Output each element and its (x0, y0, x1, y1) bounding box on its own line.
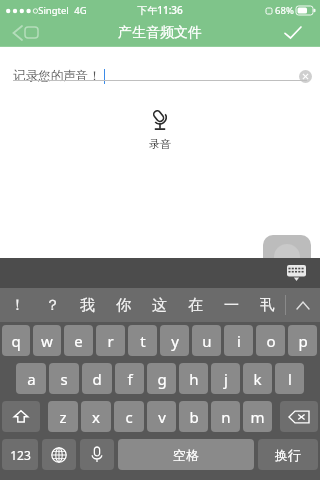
button[interactable]: w (33, 325, 61, 356)
button[interactable]: Clear text (299, 70, 312, 83)
staticText: n (221, 407, 231, 427)
button[interactable]: y (160, 325, 189, 356)
staticText: 丮 (260, 296, 275, 315)
button[interactable]: ？ (35, 288, 70, 322)
button[interactable]: i (224, 325, 253, 356)
button[interactable]: g (147, 363, 176, 394)
staticText: 记录您的声音！ (13, 68, 101, 84)
button[interactable]: Record (263, 235, 311, 279)
staticText: 123 (10, 447, 31, 463)
staticText: 换行 (275, 447, 301, 463)
button[interactable]: Done (276, 21, 310, 45)
button[interactable]: l (275, 363, 304, 394)
staticText: u (202, 331, 212, 351)
button[interactable]: z (48, 401, 78, 432)
button[interactable]: t (128, 325, 157, 356)
button[interactable]: h (179, 363, 208, 394)
staticText: 这 (152, 296, 167, 315)
staticText: e (74, 331, 83, 351)
button[interactable]: Switch language (42, 439, 76, 470)
staticText: 我 (80, 296, 95, 315)
staticText: h (189, 369, 199, 389)
button[interactable]: 记录您的声音！ (13, 68, 312, 84)
button[interactable]: a (16, 363, 46, 394)
staticText: 下午11:36 (137, 3, 183, 17)
staticText: a (27, 369, 36, 389)
button[interactable]: e (64, 325, 93, 356)
button[interactable]: ！ (0, 288, 35, 322)
button[interactable]: Back (8, 21, 48, 45)
button[interactable]: 空格 (118, 439, 254, 470)
staticText: 空格 (173, 447, 199, 463)
button[interactable]: 123 (2, 439, 38, 470)
staticText: q (11, 331, 21, 351)
staticText: 在 (188, 296, 203, 315)
staticText: ！ (10, 296, 25, 315)
button[interactable]: o (256, 325, 285, 356)
staticText: ？ (45, 296, 60, 315)
staticText: t (140, 331, 146, 351)
staticText: w (41, 331, 53, 351)
button[interactable]: 一 (213, 288, 249, 322)
staticText: d (92, 369, 102, 389)
button[interactable]: 你 (105, 288, 141, 322)
staticText: x (92, 407, 100, 427)
staticText: s (60, 369, 68, 389)
button[interactable]: s (49, 363, 79, 394)
staticText: 一 (224, 296, 239, 315)
button[interactable]: 换行 (258, 439, 318, 470)
staticText: b (189, 407, 199, 427)
button[interactable]: v (147, 401, 176, 432)
button[interactable]: q (2, 325, 30, 356)
button[interactable]: 这 (141, 288, 177, 322)
staticText: g (157, 369, 167, 389)
button[interactable]: j (211, 363, 240, 394)
button[interactable]: n (211, 401, 240, 432)
button[interactable]: 录音 (141, 102, 179, 157)
button[interactable]: k (243, 363, 272, 394)
staticText: j (224, 369, 228, 389)
staticText: r (107, 331, 114, 351)
button[interactable]: 丮 (249, 288, 285, 322)
button[interactable]: 我 (70, 288, 105, 322)
button[interactable]: Delete (280, 401, 318, 432)
staticText: p (298, 331, 308, 351)
staticText: z (59, 407, 67, 427)
button[interactable]: More candidates (286, 288, 320, 322)
staticText: m (250, 407, 265, 427)
button[interactable]: d (82, 363, 112, 394)
staticText: f (127, 369, 133, 389)
staticText: 产生音频文件 (118, 24, 202, 42)
button[interactable]: c (114, 401, 144, 432)
staticText: k (253, 369, 262, 389)
button[interactable]: Hide keyboard (284, 262, 308, 284)
button[interactable]: 在 (177, 288, 213, 322)
button[interactable]: x (81, 401, 111, 432)
button[interactable]: p (288, 325, 317, 356)
button[interactable]: Voice input (80, 439, 114, 470)
staticText: 68% (275, 4, 294, 17)
staticText: y (171, 331, 179, 351)
staticText: 录音 (149, 137, 171, 151)
staticText: o (266, 331, 276, 351)
staticText: Singtel (38, 4, 69, 17)
button[interactable]: f (115, 363, 144, 394)
button[interactable]: Shift (2, 401, 40, 432)
button[interactable]: m (243, 401, 272, 432)
staticText: c (125, 407, 133, 427)
staticText: 你 (116, 296, 131, 315)
staticText: v (158, 407, 166, 427)
button[interactable]: r (96, 325, 125, 356)
staticText: 4G (74, 4, 87, 17)
button[interactable]: u (192, 325, 221, 356)
staticText: l (288, 369, 292, 389)
staticText: i (237, 331, 241, 351)
button[interactable]: b (179, 401, 208, 432)
